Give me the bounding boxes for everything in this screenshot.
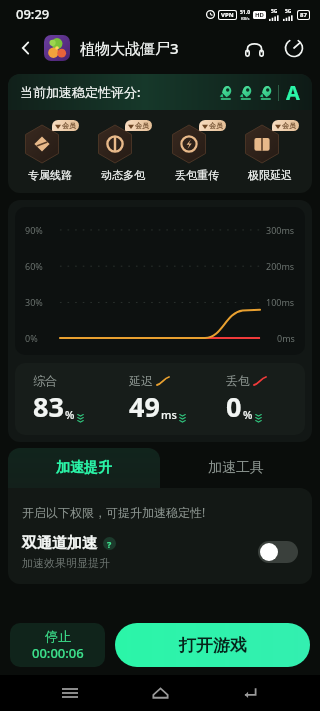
button[interactable]: 加速提升: [8, 448, 160, 488]
staticText: 51.0: [240, 9, 250, 16]
staticText: 会员: [209, 121, 223, 130]
staticText: 87: [300, 11, 307, 19]
staticText: 延迟: [129, 373, 153, 388]
staticText: KB/s: [241, 16, 250, 21]
button[interactable]: 延迟: [111, 373, 208, 425]
staticText: A: [286, 79, 300, 106]
staticText: 打开游戏: [179, 635, 247, 656]
button[interactable]: Toggle dual channel: [258, 541, 298, 563]
staticText: 83: [33, 388, 64, 425]
button[interactable]: Recents: [50, 675, 90, 711]
staticText: 0ms: [277, 332, 295, 344]
button[interactable]: 双通道加速: [22, 534, 298, 570]
staticText: 会员: [282, 121, 296, 130]
staticText: %: [243, 407, 253, 422]
staticText: ms: [161, 407, 177, 422]
staticText: 动态多包: [101, 168, 145, 182]
staticText: ?: [107, 538, 112, 550]
staticText: 100ms: [266, 296, 295, 308]
staticText: 90%: [25, 224, 43, 236]
staticText: 300ms: [266, 224, 295, 236]
button[interactable]: 丢包: [208, 373, 305, 425]
staticText: 5G: [271, 8, 278, 15]
staticText: 开启以下权限，可提升加速稳定性!: [22, 504, 206, 520]
button[interactable]: 综合: [15, 373, 111, 425]
button[interactable]: 停止: [10, 623, 105, 667]
staticText: 0%: [25, 332, 38, 344]
staticText: 60%: [25, 260, 43, 272]
button[interactable]: 打开游戏: [115, 623, 310, 667]
staticText: 5G: [285, 8, 292, 15]
button[interactable]: 会员: [166, 120, 228, 182]
button[interactable]: Back: [10, 32, 42, 64]
staticText: 丢包重传: [175, 168, 219, 182]
staticText: 双通道加速: [22, 534, 97, 553]
staticText: 加速提升: [56, 459, 112, 477]
button[interactable]: Home: [140, 675, 180, 711]
staticText: 00:00:06: [32, 644, 84, 662]
staticText: 加速效果明显提升: [22, 556, 110, 570]
button[interactable]: 会员: [19, 120, 81, 182]
staticText: 综合: [33, 373, 57, 388]
button[interactable]: Refresh: [278, 32, 310, 64]
staticText: 会员: [135, 121, 149, 130]
staticText: 停止: [45, 628, 71, 644]
button[interactable]: Support: [238, 32, 270, 64]
staticText: 09:29: [16, 5, 50, 23]
staticText: 30%: [25, 296, 43, 308]
staticText: 植物大战僵尸3: [80, 38, 179, 58]
staticText: HD: [255, 11, 264, 19]
staticText: 加速工具: [208, 459, 264, 477]
staticText: 极限延迟: [248, 168, 292, 182]
staticText: 0: [226, 388, 242, 425]
button[interactable]: 会员: [239, 120, 301, 182]
staticText: %: [65, 407, 75, 422]
staticText: VPN: [221, 11, 234, 19]
staticText: 200ms: [266, 260, 295, 272]
staticText: 当前加速稳定性评分:: [20, 83, 141, 101]
button[interactable]: 加速工具: [160, 448, 312, 488]
button[interactable]: Back: [230, 675, 270, 711]
staticText: 丢包: [226, 373, 250, 388]
staticText: 专属线路: [28, 168, 72, 182]
staticText: 会员: [62, 121, 76, 130]
button[interactable]: 会员: [92, 120, 154, 182]
staticText: 49: [129, 388, 160, 425]
